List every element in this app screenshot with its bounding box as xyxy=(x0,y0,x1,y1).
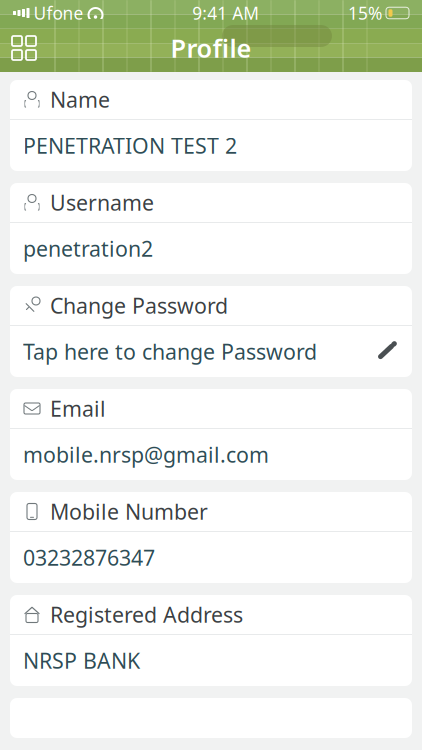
staticText: Mobile Number xyxy=(50,497,208,526)
staticText: 03232876347 xyxy=(23,543,155,572)
staticText: penetration2 xyxy=(23,234,153,263)
staticText: Profile xyxy=(170,31,251,65)
staticText: Name xyxy=(50,85,110,114)
staticText: Username xyxy=(50,188,154,217)
button[interactable]: Menu xyxy=(0,26,48,70)
staticText: NRSP BANK xyxy=(23,646,140,675)
staticText: PENETRATION TEST 2 xyxy=(23,131,237,160)
staticText: 15% xyxy=(348,1,382,24)
staticText: Change Password xyxy=(50,291,228,320)
staticText: 9:41 AM xyxy=(192,1,259,24)
staticText: Ufone xyxy=(33,1,83,24)
staticText: Tap here to change Password xyxy=(23,337,317,366)
staticText: Registered Address xyxy=(50,600,243,629)
button[interactable]: Change Password xyxy=(10,286,412,377)
staticText: mobile.nrsp@gmail.com xyxy=(23,440,269,469)
staticText: Email xyxy=(50,394,106,423)
